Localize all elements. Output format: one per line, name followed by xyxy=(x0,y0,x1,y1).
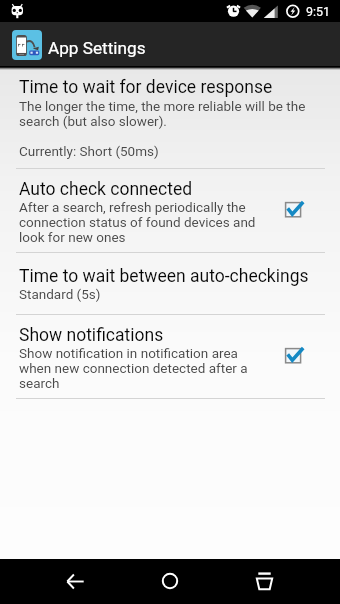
staticText: The longer the time, the more reliable w… xyxy=(19,98,325,129)
button[interactable]: Time to wait between auto-checkings xyxy=(0,253,340,314)
button[interactable]: Time to wait for device response xyxy=(0,67,340,168)
staticText: After a search, refresh periodically the… xyxy=(19,199,262,245)
staticText: Time to wait for device response xyxy=(19,77,273,98)
button[interactable]: Back xyxy=(53,559,98,604)
other: Toggle setting xyxy=(285,344,305,364)
button[interactable]: Recent apps xyxy=(242,559,287,604)
button[interactable]: Auto check connected xyxy=(0,169,340,252)
staticText: Show notifications xyxy=(19,325,164,346)
other: Toggle setting xyxy=(285,198,305,218)
button[interactable]: Home xyxy=(147,559,192,604)
staticText: Currently: Short (50ms) xyxy=(19,143,159,159)
staticText: 9:51 xyxy=(306,4,331,19)
button[interactable]: Show notifications xyxy=(0,315,340,398)
staticText: Show notification in notification area w… xyxy=(19,345,262,391)
staticText: Standard (5s) xyxy=(19,286,325,302)
staticText: Auto check connected xyxy=(19,179,193,200)
staticText: App Settings xyxy=(48,38,146,58)
staticText: Time to wait between auto-checkings xyxy=(19,266,309,287)
